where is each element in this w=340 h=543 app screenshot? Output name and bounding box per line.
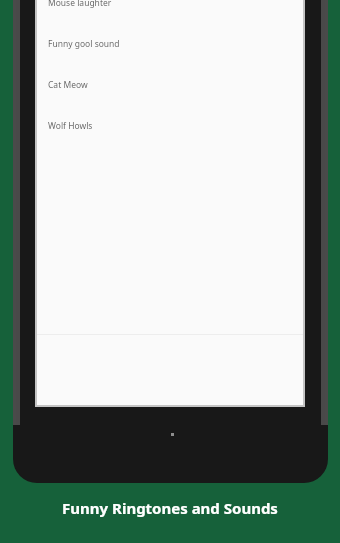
button[interactable]: Mouse laughter: [37, 0, 303, 23]
staticText: Funny Ringtones and Sounds: [62, 498, 278, 518]
staticText: Funny gool sound: [48, 38, 120, 50]
staticText: Mouse laughter: [48, 0, 112, 9]
staticText: Wolf Howls: [48, 120, 93, 132]
button[interactable]: Cat Meow: [37, 64, 303, 105]
button[interactable]: Funny Ringtones and Sounds: [0, 494, 340, 522]
button[interactable]: Funny gool sound: [37, 23, 303, 64]
button[interactable]: Wolf Howls: [37, 105, 303, 146]
staticText: Cat Meow: [48, 79, 88, 91]
